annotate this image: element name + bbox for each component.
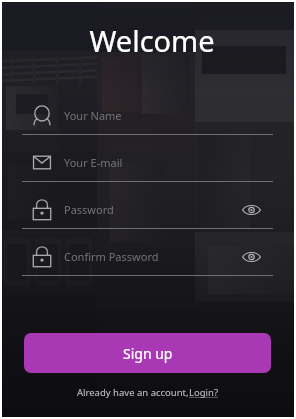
button[interactable]: Show password [239,245,263,269]
button[interactable]: Sign up [24,333,271,373]
staticText: Already have an account, [77,386,189,399]
staticText: Login? [189,386,219,399]
staticText: Password [64,202,239,217]
staticText: Confirm Password [64,249,239,264]
staticText: Sign up [123,344,173,363]
button[interactable]: Show password [239,198,263,222]
staticText: Your Name [64,108,263,123]
staticText: Your E-mail [64,155,263,170]
staticText: Welcome [6,21,296,60]
button[interactable]: Already have an account, [77,386,219,399]
